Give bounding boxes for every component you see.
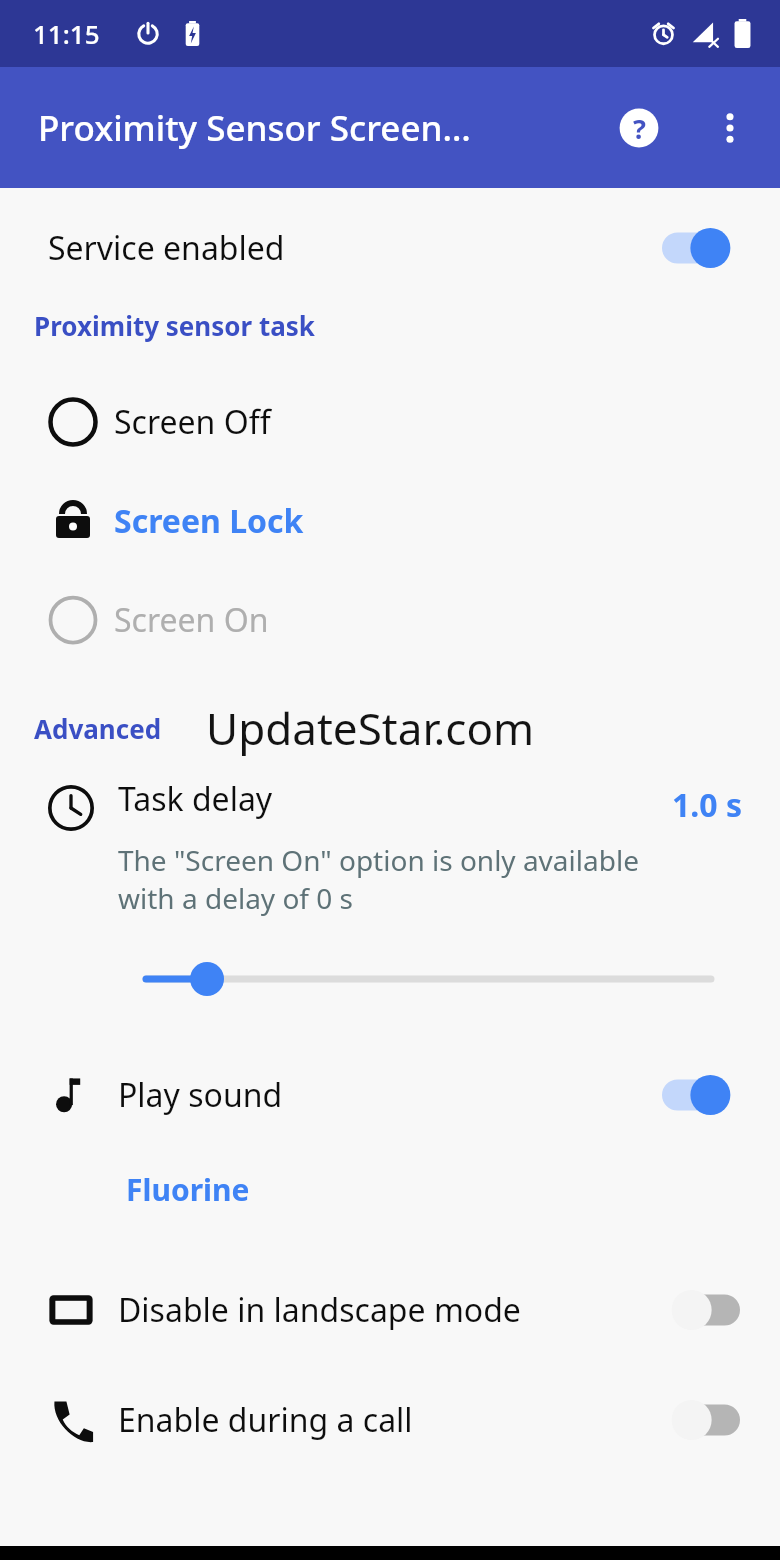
staticText: Advanced <box>34 711 162 746</box>
staticText: Fluorine <box>126 1169 250 1210</box>
staticText: Enable during a call <box>118 1398 413 1442</box>
staticText: Screen On <box>114 598 269 642</box>
button[interactable]: Enable during a call <box>0 1378 780 1462</box>
staticText: Play sound <box>118 1073 283 1117</box>
staticText: Screen Lock <box>114 499 304 543</box>
button[interactable]: Toggle off <box>662 1395 740 1445</box>
staticText: Disable in landscape mode <box>118 1288 521 1332</box>
button[interactable]: Disable in landscape mode <box>0 1268 780 1352</box>
button[interactable]: More options <box>698 96 762 160</box>
staticText: 1.0 s <box>672 783 742 827</box>
button[interactable]: Task delay slider <box>0 951 780 1007</box>
button[interactable]: Service enabled <box>0 188 780 308</box>
staticText: ? <box>633 110 646 147</box>
button[interactable]: Screen On <box>0 585 780 655</box>
staticText: UpdateStar.com <box>206 698 535 758</box>
staticText: Proximity Sensor Screen… <box>38 104 578 152</box>
button[interactable]: Screen Lock <box>0 486 780 556</box>
button[interactable]: Play sound <box>0 1053 780 1137</box>
staticText: Screen Off <box>114 400 271 444</box>
staticText: Proximity sensor task <box>34 308 315 343</box>
button[interactable]: Task delay <box>0 777 780 917</box>
staticText: Task delay <box>118 777 273 821</box>
staticText: Service enabled <box>48 226 285 270</box>
button[interactable]: Fluorine <box>110 1163 266 1216</box>
staticText: 11:15 <box>33 16 100 51</box>
button[interactable]: Help <box>607 96 671 160</box>
button[interactable]: Toggle off <box>662 1285 740 1335</box>
button[interactable]: Screen Off <box>0 387 780 457</box>
button[interactable]: Toggle on <box>662 1070 740 1120</box>
staticText: The "Screen On" option is only available… <box>118 841 672 917</box>
button[interactable]: Toggle on <box>662 223 740 273</box>
